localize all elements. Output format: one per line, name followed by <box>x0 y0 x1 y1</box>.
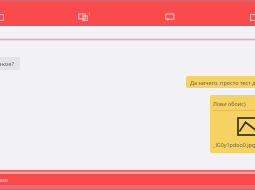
button[interactable]: More options <box>250 14 255 21</box>
button[interactable]: Ну и что это такое? <box>0 57 20 70</box>
button[interactable]: Лови обоис) <box>210 95 255 153</box>
staticText: Лови обоис) <box>213 100 246 107</box>
button[interactable]: Да ничего, просто тест для <box>186 76 255 88</box>
button[interactable]: Сообщение <box>0 174 255 185</box>
button[interactable]: Back <box>0 14 4 21</box>
button[interactable]: Devices <box>78 13 88 21</box>
staticText: Да ничего, просто тест для <box>190 79 255 86</box>
staticText: _lG0y1pdoo0.jpg <box>213 141 255 148</box>
button[interactable]: Chat <box>165 13 175 22</box>
staticText: Ну и что это такое? <box>0 60 15 68</box>
staticText: Сообщение <box>0 176 8 184</box>
